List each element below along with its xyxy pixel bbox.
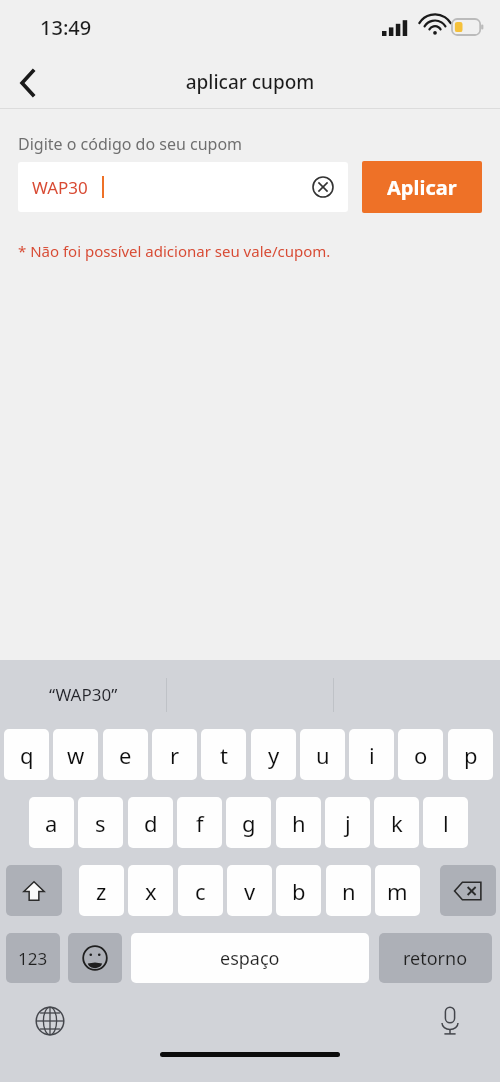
- button[interactable]: t: [201, 729, 246, 780]
- button[interactable]: n: [326, 865, 371, 916]
- staticText: 13:49: [40, 14, 92, 41]
- staticText: f: [196, 808, 204, 838]
- staticText: e: [119, 740, 132, 770]
- staticText: w: [67, 740, 85, 770]
- button[interactable]: Backspace: [440, 865, 496, 916]
- staticText: i: [369, 740, 375, 770]
- button[interactable]: Clear: [306, 170, 340, 204]
- staticText: c: [195, 876, 206, 906]
- button[interactable]: WAP30: [18, 162, 348, 212]
- staticText: k: [391, 808, 403, 838]
- button[interactable]: g: [226, 797, 271, 848]
- button[interactable]: b: [276, 865, 321, 916]
- button[interactable]: p: [448, 729, 493, 780]
- button[interactable]: “WAP30”: [0, 666, 166, 722]
- staticText: z: [96, 876, 107, 906]
- button[interactable]: s: [78, 797, 123, 848]
- button[interactable]: Aplicar: [362, 161, 482, 213]
- staticText: x: [145, 876, 157, 906]
- button[interactable]: retorno: [379, 933, 492, 983]
- staticText: l: [443, 808, 449, 838]
- staticText: Aplicar: [387, 174, 457, 201]
- staticText: 123: [18, 947, 48, 970]
- button[interactable]: Back: [0, 56, 54, 109]
- staticText: j: [345, 808, 351, 838]
- button[interactable]: Change keyboard language: [26, 997, 74, 1045]
- button[interactable]: m: [375, 865, 420, 916]
- staticText: aplicar cupom: [0, 69, 500, 95]
- staticText: q: [20, 740, 34, 770]
- staticText: u: [316, 740, 330, 770]
- staticText: WAP30: [32, 176, 88, 199]
- staticText: t: [220, 740, 228, 770]
- button[interactable]: a: [29, 797, 74, 848]
- button[interactable]: 123: [6, 933, 60, 983]
- staticText: y: [268, 740, 280, 770]
- button[interactable]: r: [152, 729, 197, 780]
- staticText: v: [244, 876, 256, 906]
- button[interactable]: u: [300, 729, 345, 780]
- button[interactable]: h: [276, 797, 321, 848]
- staticText: retorno: [403, 946, 468, 971]
- staticText: “WAP30”: [49, 683, 118, 706]
- staticText: espaço: [220, 946, 280, 971]
- button[interactable]: d: [128, 797, 173, 848]
- button[interactable]: y: [251, 729, 296, 780]
- button[interactable]: e: [103, 729, 148, 780]
- button[interactable]: Voice input: [426, 997, 474, 1045]
- button[interactable]: f: [177, 797, 222, 848]
- staticText: a: [45, 808, 58, 838]
- button[interactable]: k: [374, 797, 419, 848]
- button[interactable]: l: [423, 797, 468, 848]
- button[interactable]: x: [128, 865, 173, 916]
- button[interactable]: i: [349, 729, 394, 780]
- button[interactable]: z: [79, 865, 124, 916]
- staticText: g: [242, 808, 256, 838]
- staticText: r: [170, 740, 180, 770]
- staticText: h: [292, 808, 306, 838]
- staticText: * Não foi possível adicionar seu vale/cu…: [18, 241, 331, 261]
- button[interactable]: o: [398, 729, 443, 780]
- button[interactable]: w: [53, 729, 98, 780]
- staticText: Digite o código do seu cupom: [18, 133, 243, 155]
- button[interactable]: Shift: [6, 865, 62, 916]
- button[interactable]: c: [178, 865, 223, 916]
- button[interactable]: q: [4, 729, 49, 780]
- staticText: m: [387, 876, 408, 906]
- staticText: b: [292, 876, 306, 906]
- button[interactable]: j: [325, 797, 370, 848]
- staticText: n: [342, 876, 356, 906]
- staticText: s: [95, 808, 106, 838]
- button[interactable]: v: [227, 865, 272, 916]
- staticText: o: [414, 740, 428, 770]
- button[interactable]: Emoji: [68, 933, 122, 983]
- button[interactable]: espaço: [131, 933, 369, 983]
- staticText: d: [144, 808, 158, 838]
- staticText: p: [464, 740, 478, 770]
